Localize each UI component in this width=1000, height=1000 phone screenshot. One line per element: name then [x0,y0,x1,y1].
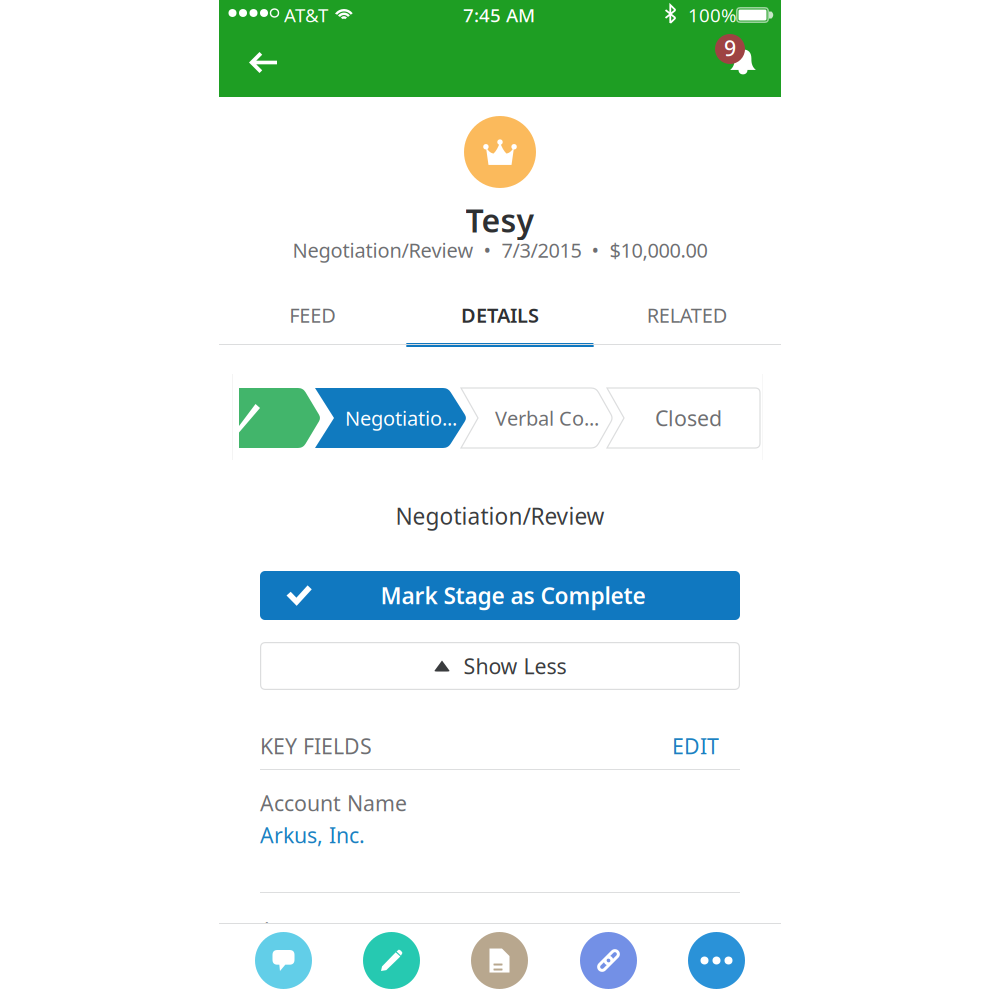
button[interactable]: EDIT [650,727,740,765]
button[interactable]: Chat [255,932,312,989]
button[interactable]: Arkus, Inc. [260,822,460,848]
staticText: DETAILS [461,302,539,328]
staticText: 100% [688,3,737,27]
staticText: RELATED [647,302,728,328]
staticText: Account Name [260,789,407,817]
button[interactable]: Files [471,932,528,989]
staticText: Mark Stage as Complete [380,580,645,610]
staticText: Amount [260,916,341,944]
button[interactable]: RELATED [594,290,781,344]
staticText: Closed [655,404,722,432]
staticText: Negotiation/Review • 7/3/2015 • $10,000.… [292,237,707,263]
staticText: 9 [724,34,736,62]
staticText: 7:45 AM [463,3,535,27]
button[interactable]: Show Less [260,642,740,690]
staticText: Tesy [465,199,534,241]
staticText: EDIT [672,732,719,760]
staticText: AT&T [284,3,328,27]
button[interactable]: Back [234,33,292,91]
button[interactable]: Mark Stage as Complete [260,571,740,620]
button[interactable]: FEED [219,290,406,344]
staticText: Show Less [463,652,566,680]
button[interactable]: New Note [363,932,420,989]
staticText: Verbal Co... [495,405,599,431]
staticText: KEY FIELDS [260,732,372,760]
staticText: Negotiation/Review [395,501,604,531]
button[interactable]: Link [580,932,637,989]
staticText: Negotiatio... [345,405,457,431]
staticText: FEED [289,302,336,328]
button[interactable]: Notifications [700,32,762,90]
button[interactable]: DETAILS [406,290,594,344]
button[interactable]: More [688,932,745,989]
staticText: Arkus, Inc. [260,821,365,849]
